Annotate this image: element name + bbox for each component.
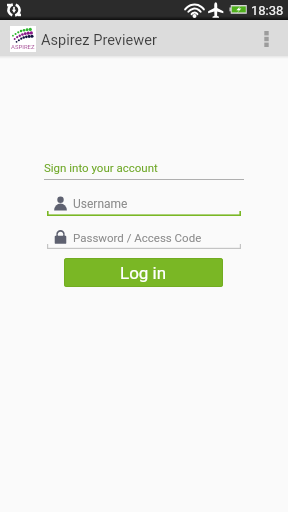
staticText: ASPIREZ — [11, 43, 35, 50]
button[interactable]: More options — [251, 21, 281, 57]
staticText: 18:38 — [251, 3, 284, 18]
staticText: Log in — [120, 263, 167, 283]
staticText: Aspirez Previewer — [41, 31, 157, 48]
button[interactable]: Log in — [64, 258, 223, 287]
staticText: Sign into your account — [44, 161, 158, 174]
staticText: Username — [73, 197, 128, 211]
button[interactable]: Password / Access Code — [47, 228, 241, 249]
button[interactable]: Username — [47, 194, 241, 216]
staticText: Password / Access Code — [73, 231, 202, 244]
